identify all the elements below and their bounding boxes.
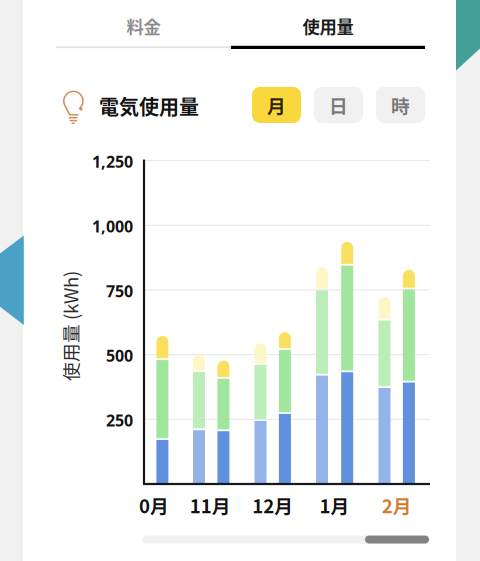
- staticText: 2月: [382, 491, 412, 518]
- staticText: 0月: [139, 491, 169, 518]
- staticText: 250: [106, 410, 133, 431]
- button[interactable]: 日: [314, 87, 363, 123]
- button[interactable]: Next period: [0, 0, 480, 561]
- staticText: 1月: [320, 491, 350, 518]
- staticText: 使用量 (kWh): [15, 312, 125, 339]
- button[interactable]: 月: [252, 87, 301, 123]
- staticText: 電気使用量: [99, 91, 199, 120]
- staticText: 11月: [190, 491, 231, 518]
- staticText: 750: [106, 280, 133, 301]
- staticText: 使用量: [302, 13, 353, 39]
- staticText: 1,250: [92, 151, 133, 172]
- staticText: 500: [106, 345, 133, 366]
- staticText: 時: [391, 91, 410, 118]
- staticText: 日: [329, 91, 348, 118]
- button[interactable]: 料金: [56, 0, 231, 49]
- staticText: 料金: [126, 13, 160, 39]
- staticText: 12月: [252, 491, 293, 518]
- staticText: 1,000: [92, 216, 133, 237]
- button[interactable]: Previous period: [0, 0, 480, 561]
- button[interactable]: 時: [376, 87, 425, 123]
- staticText: 月: [267, 91, 286, 118]
- button[interactable]: 使用量: [231, 0, 425, 49]
